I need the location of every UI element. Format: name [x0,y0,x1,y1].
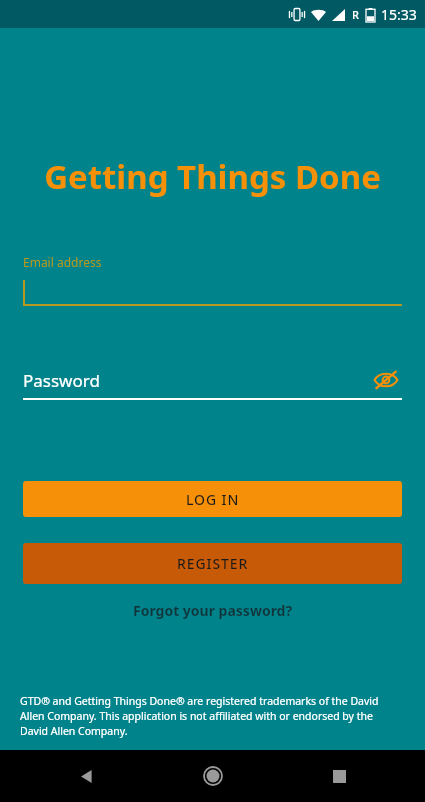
button[interactable]: Password [23,362,402,400]
staticText: Forgot your password? [133,601,293,620]
staticText: 15:33 [381,5,417,24]
staticText: GTD® and Getting Things Done® are regist… [20,694,397,738]
button[interactable]: Email address [23,254,402,306]
staticText: R [352,7,359,22]
staticText: LOG IN [186,490,240,509]
button[interactable]: Forgot your password? [123,598,303,623]
staticText: Email address [23,254,102,270]
button[interactable]: REGISTER [23,543,402,584]
staticText: Getting Things Done [0,154,425,199]
button[interactable]: Back [66,756,106,796]
button[interactable]: Show password [370,364,402,396]
staticText: REGISTER [177,554,249,573]
button[interactable]: LOG IN [23,481,402,517]
staticText: Password [23,369,100,392]
button[interactable]: Recents [319,756,359,796]
button[interactable]: Home [193,756,233,796]
